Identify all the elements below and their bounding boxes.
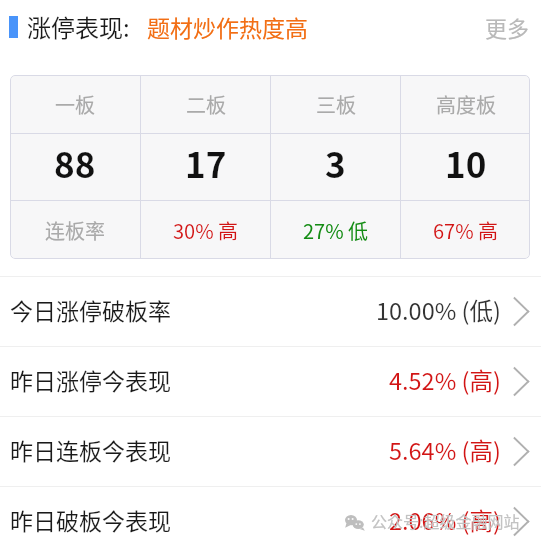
- staticText: 17: [185, 137, 227, 188]
- staticText: 公众号:超级金融网站: [371, 509, 520, 532]
- staticText: 高度板: [436, 90, 496, 119]
- staticText: 昨日连板今表现: [10, 433, 171, 466]
- staticText: 10: [445, 137, 487, 188]
- button[interactable]: 昨日连板今表现: [0, 417, 541, 486]
- staticText: 27%: [303, 216, 344, 245]
- staticText: 低: [348, 216, 368, 245]
- staticText: 二板: [186, 90, 226, 119]
- staticText: 一板: [55, 90, 95, 119]
- button[interactable]: 昨日破板今表现: [0, 487, 541, 544]
- staticText: 5.64% (高): [389, 433, 501, 467]
- staticText: 更多: [485, 11, 530, 43]
- staticText: 高: [218, 216, 238, 245]
- button[interactable]: 昨日涨停今表现: [0, 347, 541, 416]
- staticText: 今日涨停破板率: [10, 293, 171, 326]
- staticText: 昨日涨停今表现: [10, 363, 171, 396]
- staticText: 题材炒作热度高: [147, 10, 308, 43]
- staticText: 30%: [173, 216, 214, 245]
- staticText: 连板率: [45, 216, 105, 245]
- staticText: 2.06% (高): [389, 503, 501, 537]
- staticText: 4.52% (高): [389, 363, 501, 397]
- staticText: 88: [54, 137, 96, 188]
- button[interactable]: 今日涨停破板率: [0, 277, 541, 346]
- staticText: 67%: [433, 216, 474, 245]
- staticText: 3: [325, 137, 346, 188]
- staticText: 三板: [316, 90, 356, 119]
- staticText: 高: [478, 216, 498, 245]
- button[interactable]: 更多: [485, 11, 530, 43]
- staticText: 10.00% (低): [376, 293, 501, 327]
- staticText: 昨日破板今表现: [10, 503, 171, 536]
- staticText: 涨停表现:: [27, 9, 130, 44]
